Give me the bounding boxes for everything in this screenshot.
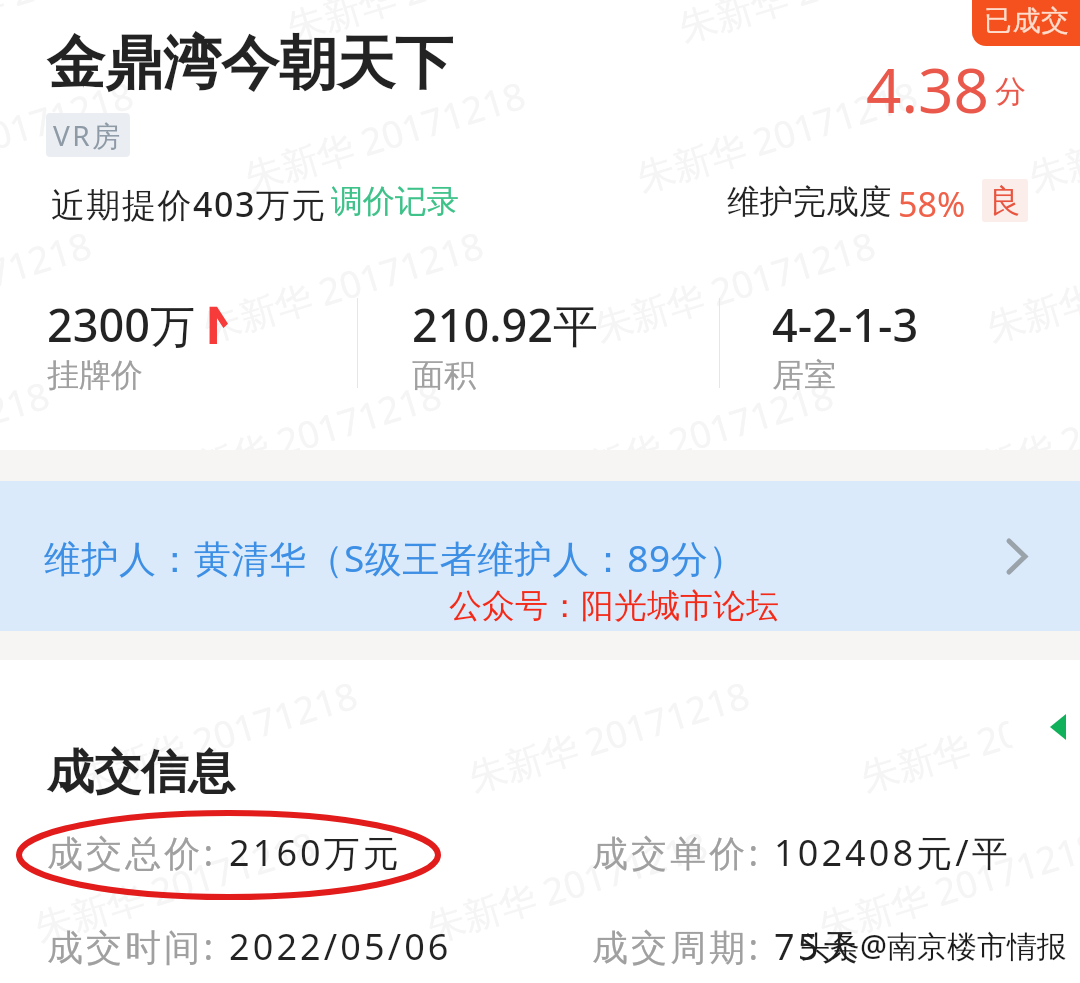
staticText: 朱新华 20171218	[71, 669, 363, 802]
staticText: 维护完成度	[727, 181, 892, 223]
staticText: 挂牌价	[47, 355, 143, 395]
staticText: 朱新华 20171218	[421, 819, 713, 952]
button[interactable]: Expand panel	[1008, 686, 1080, 768]
staticText: 成交信息	[47, 743, 235, 802]
staticText: 75天	[774, 922, 861, 971]
staticText: 朱新华 20171218	[981, 219, 1080, 352]
staticText: 金鼎湾今朝天下	[47, 27, 453, 100]
staticText: 成交时间:	[47, 922, 229, 971]
staticText: 4-2-1-3	[772, 294, 919, 355]
staticText: 210.92平	[412, 294, 598, 355]
staticText: 朱新华 20171218	[155, 369, 447, 502]
staticText: 成交周期:	[592, 922, 774, 971]
button[interactable]: VR房	[46, 113, 130, 157]
button[interactable]: 调价记录	[331, 181, 459, 221]
staticText: 朱新华 20171218	[589, 219, 881, 352]
staticText: 朱新华 20171218	[855, 669, 1080, 802]
staticText: 面积	[412, 355, 476, 395]
staticText: 朱新华 20171218	[197, 219, 489, 352]
other: Collapse	[1050, 714, 1066, 740]
button[interactable]: 210.92平	[412, 294, 598, 395]
staticText: 朱新华 20171218	[505, 519, 797, 652]
staticText: 朱新华 20171218	[239, 69, 531, 202]
button[interactable]: 维护人：黄清华（S级王者维护人：89分）	[0, 481, 1080, 631]
staticText: 朱新华 20171218	[547, 369, 839, 502]
staticText: 朱新华 20171218	[0, 369, 55, 502]
staticText: 朱新华 20171218	[1023, 69, 1080, 202]
staticText: 朱新华 20171218	[0, 519, 13, 652]
staticText: 良	[989, 181, 1021, 221]
staticText: 近期提价403万元	[51, 181, 327, 227]
staticText: 成交单价:	[592, 828, 774, 877]
staticText: 维护人：黄清华（S级王者维护人：89分）	[44, 532, 746, 583]
staticText: 4.38	[866, 47, 990, 131]
staticText: 分	[995, 72, 1026, 111]
staticText: 成交总价:	[47, 828, 229, 877]
staticText: 58%	[898, 181, 966, 227]
staticText: 已成交	[984, 3, 1070, 38]
staticText: 朱新华 20171218	[0, 0, 181, 52]
staticText: 居室	[772, 355, 836, 395]
staticText: 公众号：阳光城市论坛	[449, 585, 779, 627]
staticText: 朱新华 20171218	[939, 369, 1080, 502]
staticText: 朱新华 20171218	[29, 819, 321, 952]
staticText: 朱新华 20171218	[113, 519, 405, 652]
button[interactable]: 2300万	[47, 294, 228, 395]
staticText: 朱新华 20171218	[897, 519, 1080, 652]
staticText: 2022/05/06	[229, 922, 452, 971]
staticText: 2160万元	[229, 828, 402, 877]
staticText: 朱新华 20171218	[0, 219, 97, 352]
button[interactable]: 已成交	[972, 0, 1080, 46]
staticText: VR房	[53, 116, 123, 154]
staticText: 头条@南京楼市情报	[800, 925, 1067, 966]
staticText: 102408元/平	[774, 828, 1011, 877]
staticText: 朱新华 20171218	[281, 0, 573, 52]
staticText: 朱新华 20171218	[1065, 0, 1080, 52]
other: More	[1007, 539, 1027, 574]
button[interactable]: 4-2-1-3	[772, 294, 919, 395]
staticText: 朱新华 20171218	[813, 819, 1080, 952]
staticText: 朱新华 20171218	[0, 69, 139, 202]
staticText: 朱新华 20171218	[631, 69, 923, 202]
staticText: 2300万	[47, 294, 195, 355]
